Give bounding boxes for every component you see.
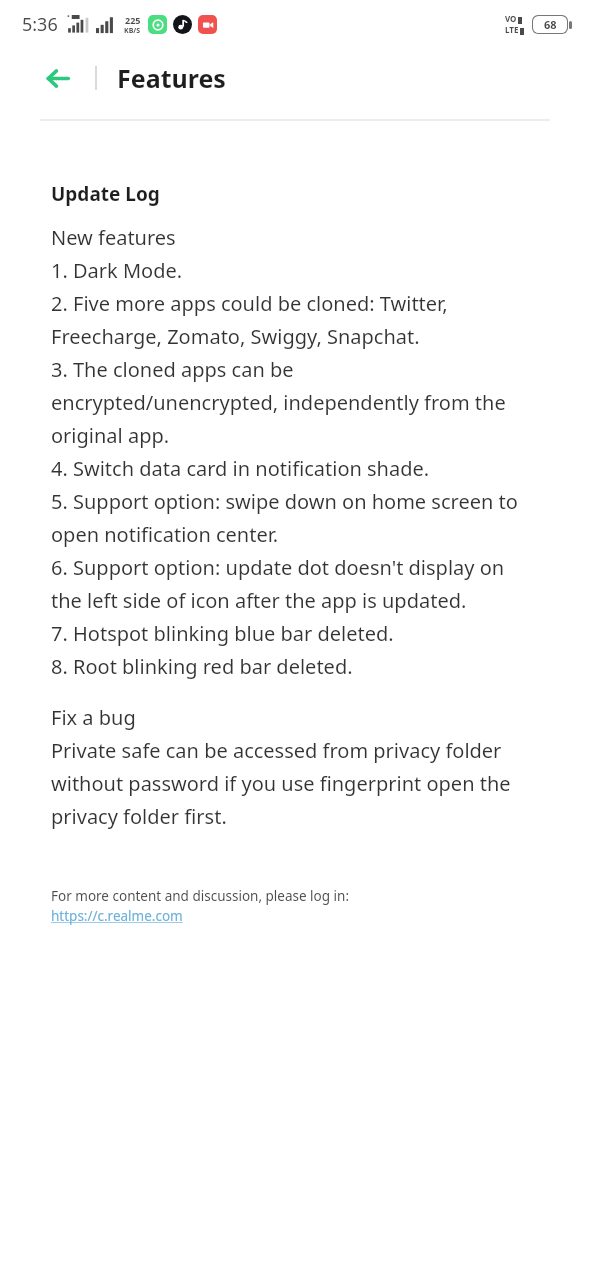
staticText: LTE: [505, 24, 519, 35]
staticText: For more content and discussion, please …: [51, 887, 350, 905]
staticText: Features: [117, 61, 226, 95]
staticText: VO: [505, 13, 517, 24]
staticText: New features 1. Dark Mode. 2. Five more …: [51, 224, 518, 680]
button[interactable]: Back: [33, 54, 81, 102]
button[interactable]: https://c.realme.com: [51, 907, 183, 925]
staticText: Fix a bug Private safe can be accessed f…: [51, 704, 511, 830]
staticText: https://c.realme.com: [51, 907, 183, 925]
staticText: 225: [125, 14, 141, 26]
staticText: 68: [544, 17, 557, 32]
staticText: KB/S: [124, 26, 141, 36]
staticText: Update Log: [51, 181, 160, 207]
staticText: 5:36: [22, 12, 58, 37]
